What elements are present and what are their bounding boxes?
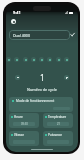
button[interactable]: Puissance <box>43 131 73 146</box>
staticText: Heure <box>14 115 23 119</box>
button[interactable]: Segment 1 <box>6 57 11 62</box>
staticText: Vitesse <box>14 133 24 137</box>
button[interactable]: Segment 6 <box>47 57 52 62</box>
button[interactable]: Decrease <box>15 75 20 80</box>
staticText: Mode de fonctionnement <box>16 99 55 103</box>
staticText: Température <box>48 115 67 119</box>
button[interactable]: Segment 8 <box>64 57 69 62</box>
button[interactable]: Profile <box>11 19 16 24</box>
button[interactable]: Heure <box>9 113 39 128</box>
button[interactable]: Segment 4 <box>31 57 36 62</box>
staticText: 09:30 <box>21 122 28 126</box>
button[interactable]: Mode de fonctionnement <box>9 97 73 112</box>
button[interactable]: Segment 2 <box>14 57 19 62</box>
staticText: 21 <box>57 122 60 126</box>
staticText: 1 <box>40 72 45 83</box>
staticText: Numéro de cycle <box>6 87 78 92</box>
button[interactable]: Segment 7 <box>56 57 61 62</box>
button[interactable]: Température <box>43 113 73 128</box>
staticText: Dual 4000 <box>13 33 30 38</box>
button[interactable]: Segment 3 <box>23 57 28 62</box>
staticText: Puissance <box>48 133 62 137</box>
button[interactable]: Increase <box>64 75 69 80</box>
button[interactable]: Vitesse <box>9 131 39 146</box>
button[interactable]: Segment 5 <box>39 57 44 62</box>
staticText: 9:41 <box>13 10 21 15</box>
button[interactable]: Confirm <box>70 32 75 37</box>
button[interactable]: Dual 4000 <box>9 30 70 40</box>
